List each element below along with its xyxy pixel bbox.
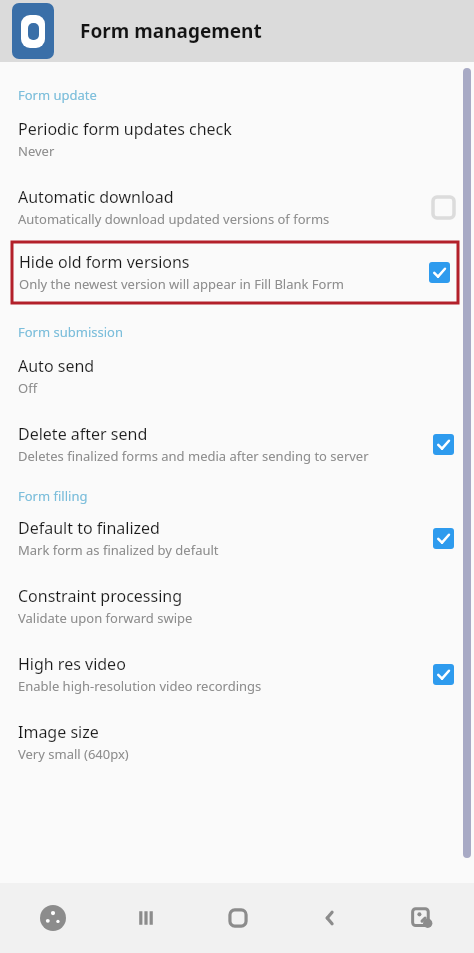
button[interactable]: Back: [284, 883, 376, 953]
staticText: Form filling: [18, 487, 88, 505]
staticText: Hide old form versions: [19, 251, 190, 273]
button[interactable]: Assistant: [6, 883, 99, 953]
button[interactable]: Screenshot: [376, 883, 468, 953]
staticText: Validate upon forward swipe: [18, 609, 193, 627]
button[interactable]: Toggle: [428, 261, 450, 283]
staticText: Auto send: [18, 355, 95, 377]
button[interactable]: High res video: [0, 627, 474, 695]
staticText: Mark form as finalized by default: [18, 541, 219, 559]
button[interactable]: Image size: [0, 695, 474, 763]
button[interactable]: Automatic download: [0, 160, 474, 228]
button[interactable]: Toggle: [432, 527, 454, 549]
button[interactable]: Delete after send: [0, 397, 474, 465]
staticText: Never: [18, 142, 55, 160]
staticText: Only the newest version will appear in F…: [19, 275, 344, 293]
staticText: Form submission: [18, 323, 123, 341]
staticText: Periodic form updates check: [18, 118, 232, 140]
staticText: Enable high-resolution video recordings: [18, 677, 262, 695]
staticText: High res video: [18, 653, 126, 675]
staticText: Very small (640px): [18, 745, 129, 763]
staticText: Constraint processing: [18, 585, 183, 607]
button[interactable]: Auto send: [0, 341, 474, 397]
staticText: Form update: [18, 86, 97, 104]
button[interactable]: Periodic form updates check: [0, 104, 474, 160]
button[interactable]: Toggle: [432, 663, 454, 685]
staticText: Image size: [18, 721, 99, 743]
button[interactable]: Constraint processing: [0, 559, 474, 627]
staticText: Form management: [80, 18, 262, 44]
staticText: Automatic download: [18, 186, 174, 208]
button[interactable]: Toggle: [432, 196, 454, 218]
staticText: Delete after send: [18, 423, 148, 445]
staticText: Default to finalized: [18, 517, 160, 539]
button[interactable]: Toggle: [432, 433, 454, 455]
button[interactable]: App icon: [12, 3, 54, 59]
staticText: Deletes finalized forms and media after …: [18, 447, 369, 465]
button[interactable]: Recents: [99, 883, 192, 953]
staticText: Automatically download updated versions …: [18, 210, 330, 228]
button[interactable]: Home: [192, 883, 284, 953]
button[interactable]: Default to finalized: [0, 505, 474, 559]
button[interactable]: Hide old form versions: [12, 242, 458, 303]
staticText: Off: [18, 379, 38, 397]
